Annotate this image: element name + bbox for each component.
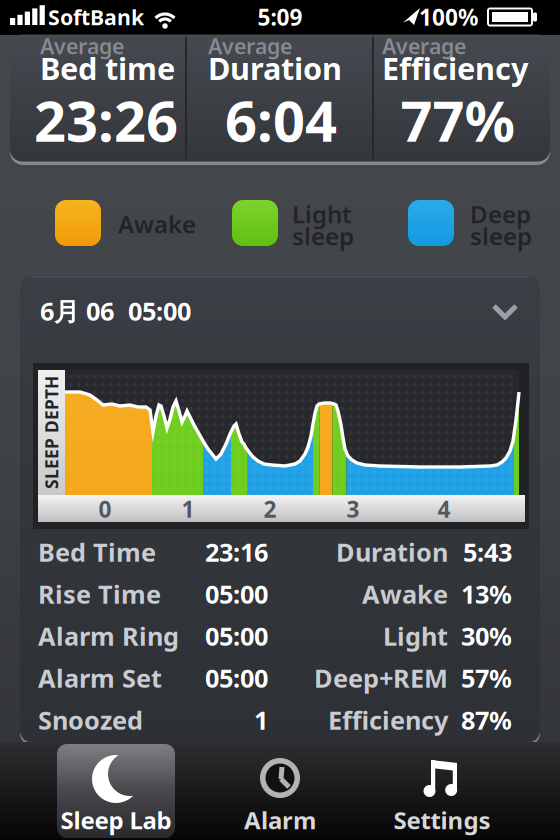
staticText: Average (382, 32, 466, 60)
staticText: Settings (393, 804, 490, 836)
staticText: SLEEP DEPTH (0, 421, 108, 444)
staticText: SoftBank (48, 3, 144, 31)
staticText: Awake (362, 577, 448, 611)
staticText: Awake (118, 208, 196, 240)
staticText: 05:00 (128, 294, 191, 328)
staticText: 1 (181, 494, 194, 524)
staticText: Duration (208, 48, 342, 88)
staticText: 5:43 (463, 535, 512, 569)
staticText: 6月 06 (40, 294, 114, 328)
button[interactable]: Sleep Lab (57, 744, 175, 838)
staticText: Snoozed (38, 703, 143, 737)
staticText: Average (208, 32, 292, 60)
staticText: 77% (400, 83, 515, 157)
staticText: Light (383, 619, 448, 653)
staticText: Alarm (244, 804, 316, 836)
staticText: 13% (461, 577, 512, 611)
staticText: 23:26 (34, 83, 178, 157)
staticText: 05:00 (205, 619, 268, 653)
button[interactable]: Alarm (220, 744, 340, 838)
button[interactable]: Settings (382, 744, 502, 838)
staticText: Efficiency (328, 703, 448, 737)
staticText: 100% (419, 2, 478, 32)
staticText: Deep (470, 198, 531, 230)
staticText: Light (292, 198, 352, 230)
staticText: Deep+REM (314, 661, 448, 695)
staticText: 57% (461, 661, 512, 695)
staticText: Sleep Lab (60, 804, 171, 836)
staticText: 05:00 (205, 577, 268, 611)
staticText: 87% (461, 703, 512, 737)
staticText: 30% (461, 619, 512, 653)
staticText: 2 (263, 494, 276, 524)
staticText: Alarm Set (38, 661, 162, 695)
staticText: 05:00 (205, 661, 268, 695)
staticText: sleep (470, 220, 532, 252)
button[interactable]: 6月 06 (20, 275, 540, 339)
staticText: Bed time (40, 48, 175, 88)
staticText: Bed Time (38, 535, 156, 569)
staticText: Alarm Ring (38, 619, 179, 653)
staticText: 23:16 (205, 535, 268, 569)
staticText: 3 (346, 494, 359, 524)
staticText: 6:04 (225, 83, 337, 157)
staticText: 1 (254, 703, 268, 737)
staticText: Rise Time (38, 577, 161, 611)
staticText: Duration (336, 535, 448, 569)
staticText: sleep (292, 220, 354, 252)
staticText: 0 (98, 494, 111, 524)
staticText: 5:09 (257, 2, 302, 32)
staticText: Average (40, 32, 124, 60)
staticText: Efficiency (382, 48, 529, 88)
staticText: 4 (437, 494, 450, 524)
